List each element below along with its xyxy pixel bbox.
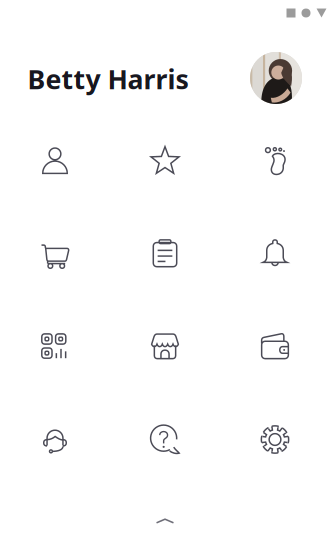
button[interactable]: Customer service <box>0 393 110 486</box>
button[interactable]: Notifications <box>220 207 330 300</box>
button[interactable]: Orders <box>110 207 220 300</box>
button[interactable]: Help <box>110 393 220 486</box>
button[interactable]: Profile <box>0 114 110 207</box>
button[interactable]: Scan QR code <box>0 300 110 393</box>
button[interactable]: Collapse <box>142 502 188 539</box>
button[interactable]: Cart <box>0 207 110 300</box>
staticText: Betty Harris <box>27 61 188 97</box>
button[interactable]: Browsing history <box>220 114 330 207</box>
button[interactable]: Profile photo <box>250 52 302 104</box>
button[interactable]: Favorites <box>110 114 220 207</box>
button[interactable]: Wallet <box>220 300 330 393</box>
button[interactable]: Store <box>110 300 220 393</box>
button[interactable]: Settings <box>220 393 330 486</box>
